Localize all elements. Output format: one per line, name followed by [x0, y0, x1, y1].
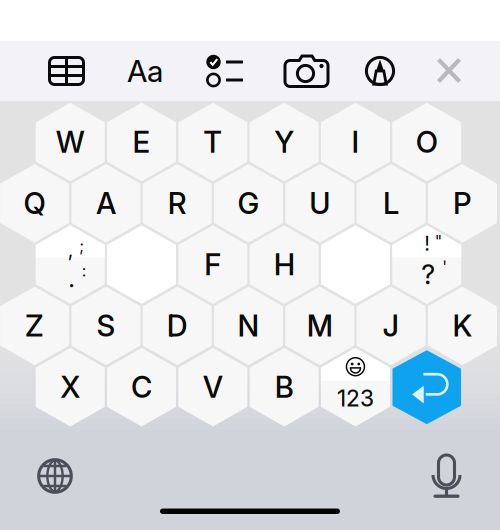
button[interactable]: Q — [0, 0, 500, 530]
staticText: L — [383, 186, 399, 221]
staticText: R — [168, 186, 187, 221]
button[interactable]: I — [0, 0, 500, 530]
staticText: 123 — [337, 384, 374, 412]
staticText: Z — [25, 308, 44, 344]
button[interactable]: Close — [0, 0, 500, 530]
button[interactable]: D — [0, 0, 500, 530]
button[interactable]: Checklist — [0, 0, 500, 530]
button[interactable]: Camera — [0, 0, 500, 530]
button[interactable]: V — [0, 0, 500, 530]
staticText: U — [309, 186, 330, 221]
staticText: ? — [421, 258, 435, 291]
staticText: D — [167, 308, 188, 344]
staticText: K — [452, 308, 472, 344]
button[interactable]: F — [0, 0, 500, 530]
button[interactable]: O — [0, 0, 500, 530]
button[interactable]: J — [0, 0, 500, 530]
staticText: ; — [79, 236, 84, 255]
staticText: Y — [274, 124, 294, 160]
staticText: M — [307, 308, 333, 344]
button[interactable]: Next keyboard — [0, 0, 500, 530]
staticText: . — [68, 264, 75, 293]
staticText: ' — [442, 257, 447, 276]
staticText: S — [96, 308, 115, 344]
staticText: X — [60, 369, 80, 405]
button[interactable]: X — [0, 0, 500, 530]
button[interactable]: Aa — [0, 0, 500, 530]
button[interactable]: R — [0, 0, 500, 530]
staticText: , — [68, 237, 74, 261]
button[interactable]: 123 — [0, 0, 500, 530]
button[interactable]: B — [0, 0, 500, 530]
button[interactable]: Return — [0, 0, 500, 530]
button[interactable]: S — [0, 0, 500, 530]
button[interactable]: M — [0, 0, 500, 530]
staticText: V — [203, 369, 223, 405]
staticText: N — [237, 308, 259, 344]
staticText: T — [203, 124, 222, 160]
staticText: " — [435, 231, 442, 251]
button[interactable]: H — [0, 0, 500, 530]
staticText: W — [56, 124, 85, 160]
staticText: I — [351, 124, 359, 160]
staticText: C — [131, 369, 152, 405]
button[interactable]: G — [0, 0, 500, 530]
button[interactable]: T — [0, 0, 500, 530]
button[interactable]: K — [0, 0, 500, 530]
button[interactable]: ! — [0, 0, 500, 530]
button[interactable]: Z — [0, 0, 500, 530]
button[interactable]: L — [0, 0, 500, 530]
button[interactable]: Table — [0, 0, 500, 530]
button[interactable]: P — [0, 0, 500, 530]
button[interactable]: Markup — [0, 0, 500, 530]
button[interactable]: W — [0, 0, 500, 530]
button[interactable]: , — [0, 0, 500, 530]
button[interactable]: N — [0, 0, 500, 530]
button[interactable]: C — [0, 0, 500, 530]
button[interactable]: Dictation — [0, 0, 500, 530]
button[interactable]: A — [0, 0, 500, 530]
staticText: O — [416, 124, 438, 160]
button[interactable]: E — [0, 0, 500, 530]
button[interactable]: Y — [0, 0, 500, 530]
staticText: Q — [24, 186, 46, 221]
staticText: G — [237, 186, 259, 221]
staticText: Aa — [127, 53, 163, 89]
staticText: H — [274, 247, 295, 282]
staticText: F — [204, 247, 221, 282]
staticText: A — [96, 186, 116, 221]
button[interactable]: U — [0, 0, 500, 530]
staticText: J — [383, 308, 400, 344]
staticText: P — [453, 186, 472, 221]
staticText: ! — [424, 232, 430, 255]
staticText: E — [133, 124, 151, 160]
staticText: : — [82, 261, 87, 280]
staticText: B — [275, 369, 294, 405]
